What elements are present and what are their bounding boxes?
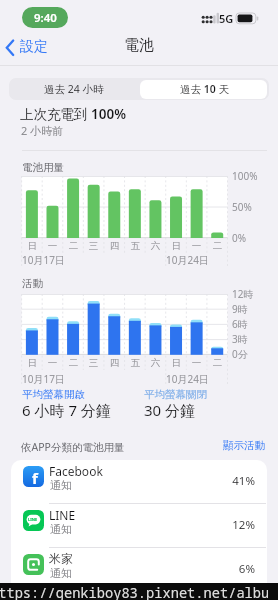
staticText: 100% xyxy=(232,169,258,183)
button[interactable]: 過去 10 天 xyxy=(139,78,269,100)
staticText: 四 xyxy=(104,240,125,252)
staticText: 依APP分類的電池用量 xyxy=(21,440,125,454)
staticText: 米家 xyxy=(49,551,73,566)
staticText: 3時 xyxy=(232,332,248,346)
button[interactable]: 顯示活動 xyxy=(195,437,265,453)
staticText: 過去 10 天 xyxy=(180,82,229,96)
staticText: 9時 xyxy=(232,302,248,316)
staticText: 一 xyxy=(42,357,63,369)
staticText: 5G xyxy=(219,11,234,26)
staticText: 過去 24 小時 xyxy=(44,82,104,96)
staticText: 一 xyxy=(186,357,207,369)
staticText: 9:40 xyxy=(34,10,57,26)
staticText: 日 xyxy=(166,240,187,252)
button[interactable]: 米家 xyxy=(11,548,267,592)
staticText: LINE xyxy=(49,507,76,523)
staticText: 50% xyxy=(232,200,252,214)
staticText: 設定 xyxy=(20,38,48,56)
staticText: 三 xyxy=(83,357,104,369)
staticText: 通知 xyxy=(50,566,72,580)
staticText: 2 小時前 xyxy=(21,123,64,138)
staticText: 6% xyxy=(205,561,255,577)
staticText: 日 xyxy=(22,357,43,369)
staticText: 通知 xyxy=(50,522,72,536)
staticText: 10月24日 xyxy=(166,253,209,267)
button[interactable]: 過去 24 小時 xyxy=(9,78,139,100)
staticText: 二 xyxy=(207,240,228,252)
staticText: LINE xyxy=(28,517,38,522)
button[interactable]: 設定 xyxy=(2,33,62,59)
staticText: 30 分鐘 xyxy=(144,400,196,420)
staticText: 電池用量 xyxy=(22,161,64,174)
staticText: 上次充電到 100% xyxy=(20,105,126,123)
staticText: 日 xyxy=(22,240,43,252)
staticText: 二 xyxy=(207,357,228,369)
staticText: https://genkiboy83.pixnet.net/album xyxy=(0,583,268,600)
staticText: f xyxy=(32,468,38,487)
staticText: 五 xyxy=(125,357,146,369)
staticText: 通知 xyxy=(50,478,72,492)
staticText: 10月17日 xyxy=(22,253,65,267)
staticText: 六 xyxy=(145,240,166,252)
button[interactable]: LINE xyxy=(11,504,267,548)
staticText: 41% xyxy=(205,473,255,489)
staticText: 五 xyxy=(125,240,146,252)
staticText: 0% xyxy=(232,231,247,245)
staticText: 一 xyxy=(186,240,207,252)
staticText: 日 xyxy=(166,357,187,369)
staticText: 10月17日 xyxy=(22,372,65,386)
staticText: 二 xyxy=(63,357,84,369)
staticText: 二 xyxy=(63,240,84,252)
staticText: 6 小時 7 分鐘 xyxy=(22,400,111,420)
staticText: 四 xyxy=(104,357,125,369)
staticText: Facebook xyxy=(49,463,103,479)
staticText: 一 xyxy=(42,240,63,252)
staticText: 0分 xyxy=(232,347,248,361)
staticText: 活動 xyxy=(22,277,43,290)
staticText: 平均螢幕開啟 xyxy=(22,388,85,401)
staticText: 電池 xyxy=(124,36,154,55)
button[interactable]: f xyxy=(11,460,267,504)
staticText: 六 xyxy=(145,357,166,369)
staticText: 6時 xyxy=(232,317,248,331)
staticText: 12時 xyxy=(232,287,254,301)
staticText: 平均螢幕關閉 xyxy=(144,388,207,401)
button[interactable]: 9:40 xyxy=(22,7,68,28)
staticText: 顯示活動 xyxy=(223,439,265,452)
staticText: 10月24日 xyxy=(166,372,209,386)
staticText: 12% xyxy=(205,517,255,533)
staticText: 三 xyxy=(83,240,104,252)
